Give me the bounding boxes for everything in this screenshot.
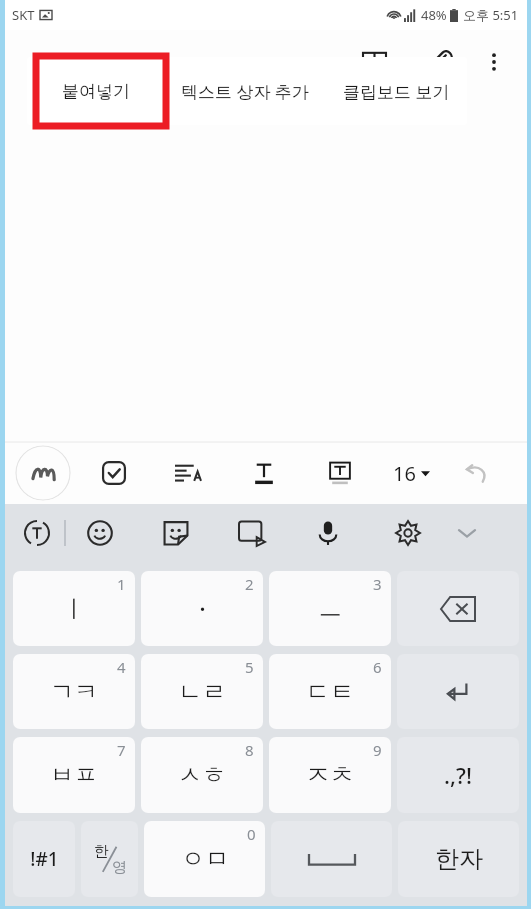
button[interactable]: · <box>141 571 263 646</box>
staticText: 한 <box>94 842 109 861</box>
staticText: 텍스트 상자 추가 <box>181 80 309 103</box>
staticText: ㅣ <box>62 594 86 624</box>
staticText: 클립보드 보기 <box>343 80 450 103</box>
staticText: ㄱㅋ <box>50 677 98 707</box>
button[interactable]: Text box <box>321 454 359 492</box>
staticText: ㅇㅁ <box>181 844 229 874</box>
button[interactable]: 16 <box>389 454 434 493</box>
button[interactable]: 붙여넣기 <box>27 57 165 125</box>
button[interactable]: Emoji <box>80 513 120 553</box>
button[interactable]: ㄷㅌ <box>269 654 391 729</box>
staticText: .,?! <box>444 760 472 790</box>
staticText: · <box>199 592 206 625</box>
button[interactable]: Korean English toggle <box>81 821 138 897</box>
staticText: ㅡ <box>318 594 342 624</box>
staticText: SKT <box>12 6 35 24</box>
button[interactable]: Checklist <box>95 454 133 492</box>
button[interactable]: Back <box>33 45 67 79</box>
button[interactable]: 클립보드 보기 <box>325 57 467 125</box>
staticText: 4 <box>117 657 126 677</box>
staticText: 영 <box>112 858 127 877</box>
button[interactable]: ㅂㅍ <box>13 737 135 813</box>
staticText: 1 <box>117 574 126 594</box>
button[interactable]: Enter <box>397 654 519 729</box>
staticText: ㅈㅊ <box>306 760 354 790</box>
staticText: !#1 <box>30 846 59 872</box>
button[interactable]: Attach <box>419 41 461 83</box>
button[interactable]: GIF <box>232 513 272 553</box>
button[interactable]: Pen <box>15 445 71 501</box>
button[interactable]: ㄴㄹ <box>141 654 263 729</box>
staticText: 오후 5:51 <box>463 6 519 24</box>
button[interactable]: ㅡ <box>269 571 391 646</box>
button[interactable]: ㅈㅊ <box>269 737 391 813</box>
button[interactable]: Backspace <box>397 571 519 646</box>
button[interactable]: Align <box>169 454 207 492</box>
button[interactable]: !#1 <box>13 821 75 897</box>
staticText: 한자 <box>435 844 483 874</box>
staticText: 5 <box>245 657 254 677</box>
staticText: 7 <box>117 740 126 760</box>
staticText: 8 <box>245 740 254 760</box>
staticText: ㅅㅎ <box>178 760 226 790</box>
staticText: 16 <box>393 460 416 487</box>
staticText: 제목 <box>85 49 127 75</box>
staticText: 3 <box>373 574 382 594</box>
button[interactable]: Hide keyboard <box>450 516 484 550</box>
button[interactable]: ㄱㅋ <box>13 654 135 729</box>
button[interactable]: Text style <box>245 454 283 492</box>
button[interactable]: Keyboard settings <box>388 513 428 553</box>
button[interactable]: .,?! <box>397 737 519 813</box>
button[interactable]: ㅇㅁ <box>144 821 265 897</box>
button[interactable]: Voice input <box>308 513 348 553</box>
button[interactable]: 텍스트 상자 추가 <box>165 57 325 125</box>
staticText: 9 <box>373 740 382 760</box>
staticText: 붙여넣기 <box>62 81 130 102</box>
button[interactable]: Translate <box>17 513 57 553</box>
staticText: ㅂㅍ <box>50 760 98 790</box>
button[interactable]: ㅅㅎ <box>141 737 263 813</box>
button[interactable]: More options <box>475 43 513 81</box>
staticText: 0 <box>247 824 256 844</box>
button[interactable]: ㅣ <box>13 571 135 646</box>
staticText: ㄴㄹ <box>178 677 226 707</box>
button[interactable]: Book view <box>353 41 395 83</box>
button[interactable]: Stickers <box>156 513 196 553</box>
staticText: 6 <box>373 657 382 677</box>
staticText: ㄷㅌ <box>306 677 354 707</box>
staticText: 2 <box>245 574 254 594</box>
button[interactable]: Undo <box>460 456 494 490</box>
button[interactable]: 한자 <box>398 821 519 897</box>
staticText: 48% <box>421 6 447 24</box>
button[interactable]: Space <box>271 821 392 897</box>
